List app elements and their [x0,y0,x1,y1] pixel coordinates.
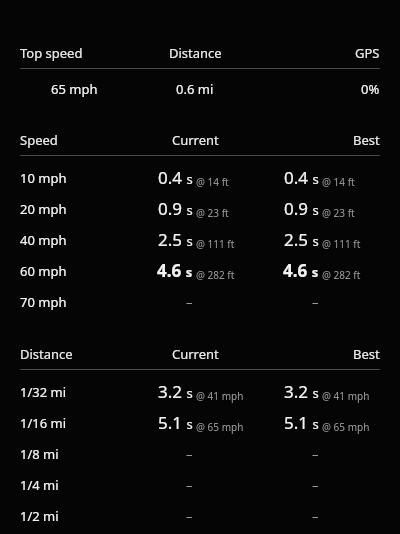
staticText: – [186,507,193,525]
button[interactable]: 40 mph [20,224,380,255]
staticText: @ 111 ft [196,237,235,251]
staticText: Distance [169,44,222,62]
staticText: 0% [361,80,380,98]
staticText: Current [172,345,219,363]
button[interactable]: 1/32 mi [20,376,380,407]
button[interactable]: 70 mph [20,286,380,317]
staticText: 0.9 s [284,197,319,220]
staticText: 1/8 mi [20,445,59,463]
staticText: @ 14 ft [322,175,355,189]
staticText: Current [172,131,219,149]
staticText: @ 282 ft [322,268,361,282]
staticText: – [312,507,319,525]
staticText: @ 41 mph [322,389,370,403]
staticText: Best [353,131,380,149]
staticText: 2.5 s [158,228,193,251]
staticText: – [312,476,319,494]
button[interactable]: 1/16 mi [20,407,380,438]
staticText: 20 mph [20,200,67,218]
staticText: 4.6 s [157,259,193,282]
staticText: @ 41 mph [196,389,244,403]
staticText: Best [353,345,380,363]
staticText: @ 23 ft [196,206,229,220]
staticText: 2.5 s [284,228,319,251]
staticText: @ 65 mph [322,420,370,434]
staticText: 0.4 s [284,166,319,189]
staticText: 3.2 s [158,380,193,403]
staticText: GPS [355,44,380,62]
button[interactable]: 60 mph [20,255,380,286]
button[interactable]: 1/4 mi [20,469,380,500]
staticText: – [312,445,319,463]
staticText: 10 mph [20,169,67,187]
staticText: 1/4 mi [20,476,59,494]
staticText: 70 mph [20,293,67,311]
staticText: 0.6 mi [176,80,214,98]
staticText: @ 282 ft [196,268,235,282]
staticText: – [186,293,193,311]
button[interactable]: 20 mph [20,193,380,224]
button[interactable]: 10 mph [20,162,380,193]
staticText: 3.2 s [284,380,319,403]
staticText: 1/32 mi [20,383,67,401]
staticText: Top speed [20,44,83,62]
button[interactable]: 1/8 mi [20,438,380,469]
staticText: @ 14 ft [196,175,229,189]
staticText: 1/16 mi [20,414,67,432]
staticText: @ 65 mph [196,420,244,434]
staticText: Distance [20,345,73,363]
staticText: @ 111 ft [322,237,361,251]
staticText: 0.4 s [158,166,193,189]
staticText: – [312,293,319,311]
staticText: 1/2 mi [20,507,59,525]
staticText: Speed [20,131,58,149]
staticText: 0.9 s [158,197,193,220]
staticText: – [186,476,193,494]
button[interactable]: 1/2 mi [20,500,380,531]
staticText: 5.1 s [158,411,193,434]
staticText: 65 mph [51,80,98,98]
staticText: 40 mph [20,231,67,249]
staticText: – [186,445,193,463]
staticText: 5.1 s [284,411,319,434]
staticText: 4.6 s [283,259,319,282]
staticText: @ 23 ft [322,206,355,220]
button[interactable]: 65 mph [20,69,380,109]
staticText: 60 mph [20,262,67,280]
